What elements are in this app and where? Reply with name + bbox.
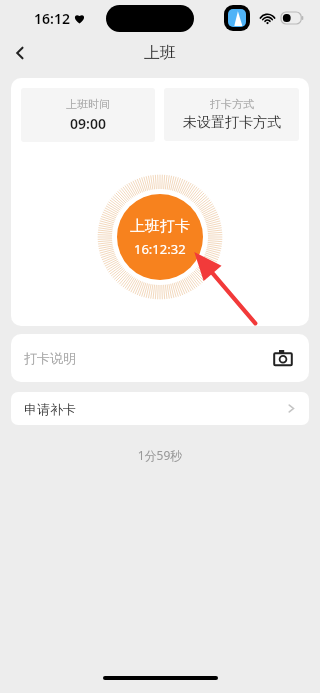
staticText: 16:12 bbox=[34, 9, 70, 28]
button[interactable]: 上班打卡 bbox=[117, 194, 203, 280]
staticText: 上班时间 bbox=[66, 97, 110, 111]
staticText: 1分59秒 bbox=[0, 447, 320, 463]
staticText: 打卡方式 bbox=[210, 97, 254, 111]
staticText: 打卡说明 bbox=[24, 350, 76, 366]
button[interactable]: 上班时间 bbox=[21, 88, 155, 142]
staticText: 申请补卡 bbox=[24, 401, 76, 417]
staticText: 上班 bbox=[144, 43, 176, 63]
button[interactable]: Back bbox=[0, 36, 40, 70]
staticText: 16:12:32 bbox=[134, 240, 186, 258]
button[interactable]: 打卡说明 bbox=[11, 334, 309, 382]
button[interactable]: Take photo bbox=[270, 345, 296, 371]
staticText: 上班打卡 bbox=[130, 217, 190, 236]
button[interactable]: 申请补卡 bbox=[11, 392, 309, 425]
staticText: 09:00 bbox=[70, 114, 106, 133]
staticText: 未设置打卡方式 bbox=[183, 114, 281, 132]
button[interactable]: 打卡方式 bbox=[164, 88, 299, 141]
